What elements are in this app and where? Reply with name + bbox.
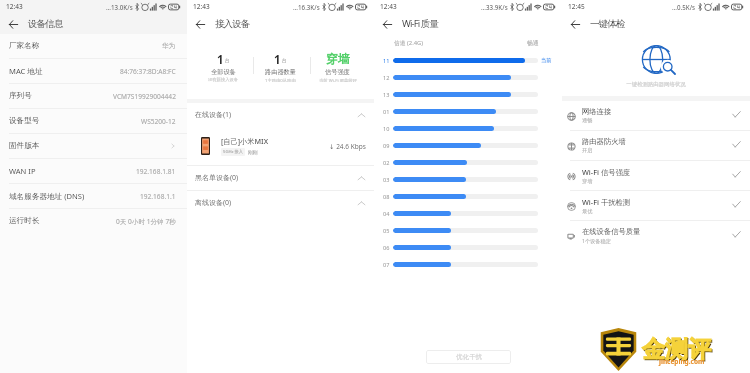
- staticText: 12:45: [568, 2, 585, 11]
- button[interactable]: Back: [568, 17, 582, 31]
- staticText: 路由器数量: [265, 68, 296, 76]
- staticText: 在线设备信号质量: [582, 227, 641, 236]
- staticText: 序列号: [9, 91, 32, 101]
- staticText: 10: [383, 125, 393, 133]
- button[interactable]: Back: [6, 17, 20, 31]
- staticText: 刚刚: [248, 149, 258, 155]
- staticText: 路由器防火墙: [582, 137, 626, 146]
- staticText: Wi-Fi 干扰检测: [582, 197, 631, 207]
- staticText: ...13.0K/s: [106, 3, 133, 11]
- staticText: 06: [383, 244, 393, 252]
- button[interactable]: 1: [252, 52, 309, 82]
- staticText: 金测评: [642, 335, 711, 364]
- staticText: 一键检测路由器网络状况: [562, 81, 750, 88]
- staticText: 1个设备稳定: [582, 237, 611, 244]
- staticText: 13: [383, 91, 393, 99]
- button[interactable]: Back: [380, 17, 394, 31]
- staticText: 畅通: [527, 39, 539, 46]
- button[interactable]: 在线设备(1): [195, 103, 366, 127]
- staticText: 12:43: [6, 2, 23, 11]
- staticText: 12:43: [380, 2, 397, 11]
- staticText: 运行时长: [9, 216, 40, 226]
- staticText: 黑名单设备(0): [195, 173, 239, 183]
- staticText: jinceping.com: [659, 357, 705, 366]
- staticText: 07: [383, 261, 393, 269]
- staticText: 192.168.1.81: [136, 167, 176, 176]
- staticText: 当前: [541, 57, 552, 64]
- staticText: 金测评: [643, 336, 712, 365]
- button[interactable]: 域名服务器地址 (DNS): [0, 184, 187, 209]
- staticText: 当前 Wi-Fi 覆盖较好: [319, 77, 357, 82]
- staticText: 1: [217, 52, 224, 65]
- staticText: 优化干扰: [456, 353, 482, 361]
- staticText: 华为: [162, 42, 176, 50]
- staticText: 域名服务器地址 (DNS): [9, 191, 85, 201]
- button[interactable]: WAN IP: [0, 159, 187, 184]
- button[interactable]: 厂家名称: [0, 34, 187, 59]
- button[interactable]: 设备型号: [0, 109, 187, 134]
- staticText: 厂家名称: [9, 41, 40, 51]
- staticText: 通畅: [582, 117, 593, 124]
- staticText: 穿墙: [582, 178, 593, 185]
- button[interactable]: 黑名单设备(0): [195, 166, 366, 190]
- staticText: Wi-Fi 质量: [402, 17, 438, 30]
- staticText: 信道 (2.4G): [394, 39, 423, 47]
- staticText: ↓ 24.6 Kbps: [329, 142, 366, 151]
- staticText: 01: [383, 108, 393, 116]
- staticText: 在线设备(1): [195, 110, 232, 120]
- staticText: 最优: [582, 208, 593, 215]
- staticText: 台: [282, 58, 287, 64]
- staticText: 0天 0小时 1分钟 7秒: [116, 217, 176, 226]
- button[interactable]: 在线设备信号质量: [562, 221, 750, 250]
- staticText: VCM7S19929004442: [113, 92, 176, 101]
- staticText: MAC 地址: [9, 66, 43, 76]
- staticText: 离线设备(0): [195, 198, 232, 208]
- staticText: 09: [383, 142, 393, 150]
- staticText: 开启: [582, 147, 593, 154]
- staticText: ...33.9K/s: [481, 3, 508, 11]
- staticText: 1: [274, 52, 281, 65]
- staticText: 84:76:37:8D:A8:FC: [120, 67, 176, 76]
- staticText: Wi-Fi 信号强度: [582, 167, 631, 177]
- button[interactable]: 运行时长: [0, 209, 187, 233]
- button[interactable]: 固件版本: [0, 134, 187, 159]
- staticText: WS5200-12: [141, 117, 176, 126]
- staticText: 02: [383, 159, 393, 167]
- staticText: 设备信息: [28, 18, 63, 30]
- button[interactable]: MAC 地址: [0, 59, 187, 84]
- staticText: 信号强度: [325, 68, 350, 76]
- staticText: [自己]小米MIX: [221, 136, 269, 146]
- staticText: 04: [383, 210, 393, 218]
- staticText: 台: [225, 58, 230, 64]
- button[interactable]: [自己]小米MIX: [201, 127, 366, 165]
- staticText: ...0.5K/s: [672, 3, 696, 11]
- staticText: 全部设备: [211, 68, 236, 76]
- staticText: 08: [383, 193, 393, 201]
- staticText: ...16.3K/s: [293, 3, 320, 11]
- staticText: 网络连接: [582, 107, 612, 116]
- staticText: 11: [383, 57, 393, 65]
- staticText: 固件版本: [9, 141, 40, 151]
- staticText: WAN IP: [9, 166, 36, 176]
- button[interactable]: Back: [193, 17, 207, 31]
- staticText: 05: [383, 227, 393, 235]
- staticText: 03: [383, 176, 393, 184]
- button[interactable]: 离线设备(0): [195, 191, 366, 215]
- button[interactable]: 优化干扰: [426, 350, 511, 364]
- button[interactable]: 1: [195, 52, 252, 82]
- button[interactable]: 路由器防火墙: [562, 131, 750, 161]
- button[interactable]: Wi-Fi 信号强度: [562, 161, 750, 191]
- button[interactable]: Wi-Fi 干扰检测: [562, 191, 750, 221]
- staticText: 192.168.1.1: [140, 192, 176, 201]
- staticText: 5GHz 接入: [223, 149, 243, 155]
- staticText: 12:43: [193, 2, 210, 11]
- button[interactable]: 序列号: [0, 84, 187, 109]
- button[interactable]: 网络连接: [562, 101, 750, 131]
- staticText: 一键体检: [590, 18, 625, 30]
- staticText: 12: [383, 74, 393, 82]
- staticText: 没有新接入设备: [208, 77, 239, 82]
- button[interactable]: 穿墙: [309, 52, 366, 82]
- staticText: 接入设备: [215, 18, 250, 30]
- staticText: 穿墙: [326, 52, 350, 65]
- staticText: 1主路由0从路由: [265, 77, 296, 82]
